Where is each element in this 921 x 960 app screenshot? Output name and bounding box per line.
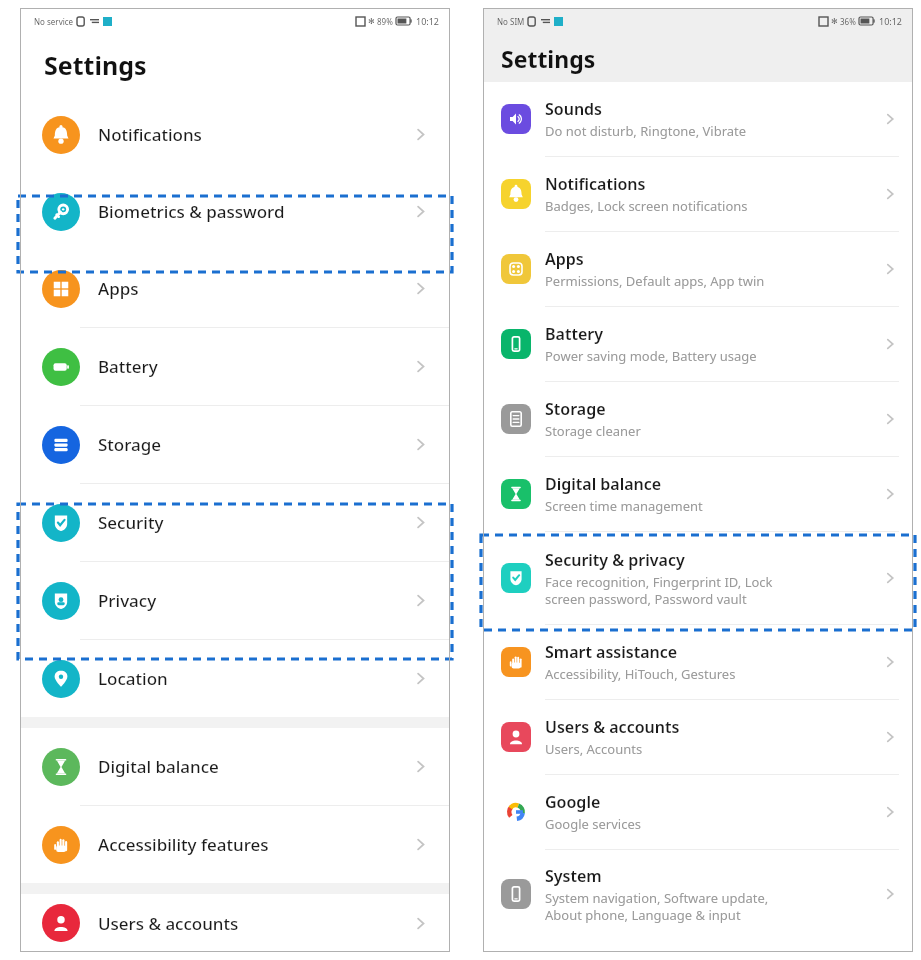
staticText: No SIM (497, 16, 525, 27)
button[interactable]: Battery (483, 307, 913, 381)
staticText: ✻ (831, 17, 838, 26)
staticText: Power saving mode, Battery usage (545, 347, 757, 365)
button[interactable]: System (483, 850, 913, 938)
button[interactable]: Location (20, 640, 450, 717)
staticText: Users & accounts (545, 716, 680, 738)
staticText: 10:12 (416, 15, 440, 27)
button[interactable]: Sounds (483, 82, 913, 156)
staticText: Storage cleaner (545, 422, 641, 440)
staticText: Sounds (545, 98, 602, 120)
staticText: Badges, Lock screen notifications (545, 197, 748, 215)
button[interactable]: Privacy (20, 562, 450, 639)
button[interactable]: Battery (20, 328, 450, 405)
staticText: No service (34, 16, 74, 27)
staticText: Accessibility features (98, 833, 269, 856)
button[interactable]: Accessibility features (20, 806, 450, 883)
staticText: Battery (545, 323, 603, 345)
staticText: Notifications (545, 173, 646, 195)
staticText: Apps (98, 277, 139, 300)
button[interactable]: Smart assistance (483, 625, 913, 699)
button[interactable]: Security (20, 484, 450, 561)
staticText: 10:12 (879, 15, 903, 27)
staticText: Google (545, 791, 601, 813)
button[interactable]: Biometrics & password (20, 173, 450, 250)
staticText: Do not disturb, Ringtone, Vibrate (545, 122, 747, 140)
staticText: Settings (44, 48, 147, 82)
staticText: Location (98, 667, 168, 690)
staticText: Digital balance (545, 473, 662, 495)
staticText: Biometrics & password (98, 200, 285, 223)
button[interactable]: Apps (483, 232, 913, 306)
staticText: System (545, 865, 602, 887)
button[interactable]: Storage (20, 406, 450, 483)
staticText: Security (98, 511, 164, 534)
staticText: Apps (545, 248, 584, 270)
button[interactable]: Notifications (483, 157, 913, 231)
staticText: Battery (98, 355, 158, 378)
staticText: Users, Accounts (545, 740, 643, 758)
staticText: Accessibility, HiTouch, Gestures (545, 665, 736, 683)
staticText: Screen time management (545, 497, 703, 515)
button[interactable]: Google (483, 775, 913, 849)
button[interactable]: Apps (20, 250, 450, 327)
staticText: 36% (840, 16, 856, 27)
staticText: Security & privacy (545, 549, 685, 571)
staticText: System navigation, Software update, Abou… (545, 889, 769, 924)
button[interactable]: Users & accounts (20, 894, 450, 952)
staticText: Google services (545, 815, 641, 833)
staticText: Privacy (98, 589, 157, 612)
button[interactable]: Storage (483, 382, 913, 456)
button[interactable]: Digital balance (20, 728, 450, 805)
button[interactable]: Digital balance (483, 457, 913, 531)
staticText: Notifications (98, 123, 202, 146)
button[interactable]: Users & accounts (483, 700, 913, 774)
staticText: ✻ (368, 17, 375, 26)
staticText: Users & accounts (98, 912, 239, 935)
staticText: Settings (501, 43, 596, 74)
staticText: Face recognition, Fingerprint ID, Lock s… (545, 573, 773, 608)
button[interactable]: Notifications (20, 96, 450, 173)
staticText: 89% (377, 16, 393, 27)
button[interactable]: Security & privacy (483, 532, 913, 624)
staticText: Digital balance (98, 755, 219, 778)
staticText: Permissions, Default apps, App twin (545, 272, 765, 290)
staticText: Storage (545, 398, 606, 420)
staticText: Storage (98, 433, 162, 456)
staticText: Smart assistance (545, 641, 678, 663)
